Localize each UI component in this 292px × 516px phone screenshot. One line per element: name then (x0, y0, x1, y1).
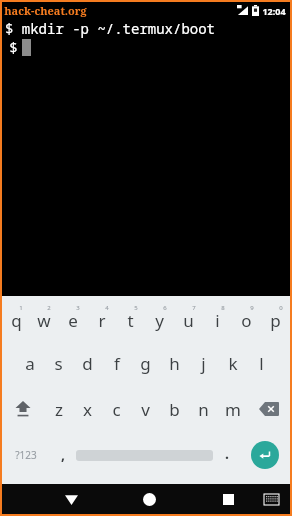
staticText: o (241, 309, 252, 332)
staticText: t (127, 309, 134, 332)
button[interactable]: Backspace (247, 386, 290, 432)
button[interactable]: 6 (145, 296, 174, 341)
staticText: z (55, 398, 63, 421)
staticText: e (68, 309, 78, 332)
staticText: m (225, 398, 241, 421)
staticText: d (82, 352, 93, 375)
staticText: . (225, 444, 229, 463)
button[interactable]: 2 (30, 296, 58, 341)
staticText: a (25, 352, 35, 375)
button[interactable]: n (189, 386, 218, 432)
staticText: 9 (250, 304, 254, 312)
staticText: f (114, 352, 120, 375)
button[interactable]: . (213, 432, 240, 478)
button[interactable]: h (160, 341, 189, 386)
staticText: 7 (192, 304, 196, 312)
staticText: ?123 (15, 448, 37, 462)
button[interactable]: Shift (2, 386, 44, 432)
staticText: n (198, 398, 209, 421)
staticText: 5 (134, 304, 138, 312)
staticText: 2 (47, 304, 51, 312)
button[interactable]: 5 (116, 296, 145, 341)
button[interactable]: l (247, 341, 276, 386)
staticText: h (169, 352, 180, 375)
button[interactable]: m (218, 386, 247, 432)
button[interactable]: 7 (174, 296, 203, 341)
button[interactable]: Home (132, 484, 166, 514)
staticText: 6 (163, 304, 167, 312)
button[interactable]: f (102, 341, 131, 386)
button[interactable]: s (44, 341, 73, 386)
staticText: y (155, 309, 164, 332)
button[interactable]: 0 (261, 296, 290, 341)
staticText: 12:04 (262, 5, 286, 17)
button[interactable]: ?123 (2, 432, 49, 478)
staticText: j (201, 352, 206, 375)
staticText: , (61, 445, 65, 464)
staticText: c (112, 398, 121, 421)
button[interactable]: x (73, 386, 102, 432)
button[interactable]: z (44, 386, 73, 432)
button[interactable]: Switch keyboard (256, 484, 286, 514)
button[interactable]: , (49, 432, 76, 478)
button[interactable]: Recents (212, 484, 244, 514)
staticText: v (141, 398, 150, 421)
button[interactable]: 8 (203, 296, 232, 341)
staticText: g (140, 352, 151, 375)
staticText: 3 (76, 304, 80, 312)
button[interactable]: 4 (87, 296, 116, 341)
staticText: 4 (105, 304, 109, 312)
button[interactable]: Back (54, 484, 88, 514)
staticText: x (83, 398, 92, 421)
button[interactable]: 9 (232, 296, 261, 341)
staticText: 1 (19, 304, 23, 312)
staticText: u (183, 309, 194, 332)
button[interactable]: k (218, 341, 247, 386)
button[interactable]: 3 (58, 296, 87, 341)
button[interactable]: Enter (240, 432, 290, 478)
staticText: p (270, 309, 281, 332)
staticText: hack-cheat.org (4, 3, 87, 18)
button[interactable]: v (131, 386, 160, 432)
staticText: k (228, 352, 238, 375)
staticText: q (11, 309, 22, 332)
button[interactable]: Space (76, 432, 213, 478)
button[interactable]: a (15, 341, 44, 386)
staticText: 0 (279, 304, 283, 312)
button[interactable]: g (131, 341, 160, 386)
staticText: b (169, 398, 180, 421)
staticText: l (259, 352, 264, 375)
button[interactable]: b (160, 386, 189, 432)
staticText: r (98, 309, 106, 332)
button[interactable]: j (189, 341, 218, 386)
staticText: i (215, 309, 220, 332)
staticText: w (37, 309, 51, 332)
button[interactable]: d (73, 341, 102, 386)
staticText: $ mkdir -p ~/.termux/boot (5, 19, 215, 38)
button[interactable]: 1 (2, 296, 30, 341)
staticText: 8 (221, 304, 225, 312)
button[interactable]: c (102, 386, 131, 432)
staticText: s (54, 352, 63, 375)
staticText: $ (5, 38, 22, 57)
